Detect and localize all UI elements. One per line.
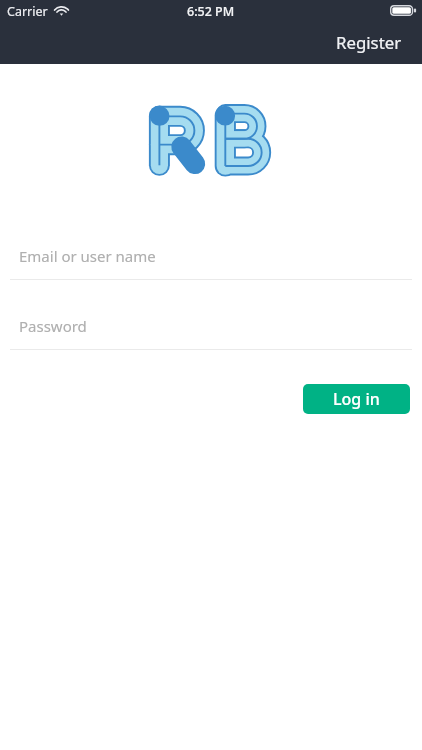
button[interactable]: Password <box>0 308 422 344</box>
other: RB logo <box>149 104 273 178</box>
staticText: Register <box>336 31 402 54</box>
staticText: 6:52 PM <box>187 3 235 19</box>
staticText: Carrier <box>7 3 48 19</box>
button[interactable]: Email or user name <box>0 238 422 274</box>
button[interactable]: Register <box>316 25 422 64</box>
button[interactable]: Log in <box>303 384 410 414</box>
other: Wifi <box>54 6 69 16</box>
staticText: Password <box>19 316 87 336</box>
staticText: Email or user name <box>19 246 156 266</box>
staticText: Log in <box>333 388 380 410</box>
other: Battery <box>390 5 416 16</box>
